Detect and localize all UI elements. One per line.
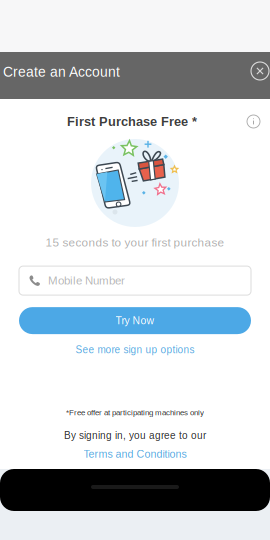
staticText: First Purchase Free * [67, 114, 197, 129]
staticText: Terms and Conditions [83, 448, 186, 460]
button[interactable]: More information [243, 111, 264, 132]
staticText: Create an Account [3, 64, 120, 80]
staticText: 15 seconds to your first purchase [45, 236, 224, 249]
button[interactable]: Close [243, 54, 270, 97]
staticText: See more sign up options [75, 344, 194, 355]
button[interactable]: Terms and Conditions [83, 445, 186, 463]
staticText: Try Now [115, 315, 154, 326]
staticText: Mobile Number [48, 274, 125, 287]
staticText: *Free offer at participating machines on… [66, 408, 204, 417]
button[interactable]: Try Now [0, 307, 270, 334]
button[interactable]: Create an Account [0, 54, 120, 97]
button[interactable]: See more sign up options [75, 340, 194, 359]
staticText: By signing in, you agree to our [64, 430, 206, 441]
